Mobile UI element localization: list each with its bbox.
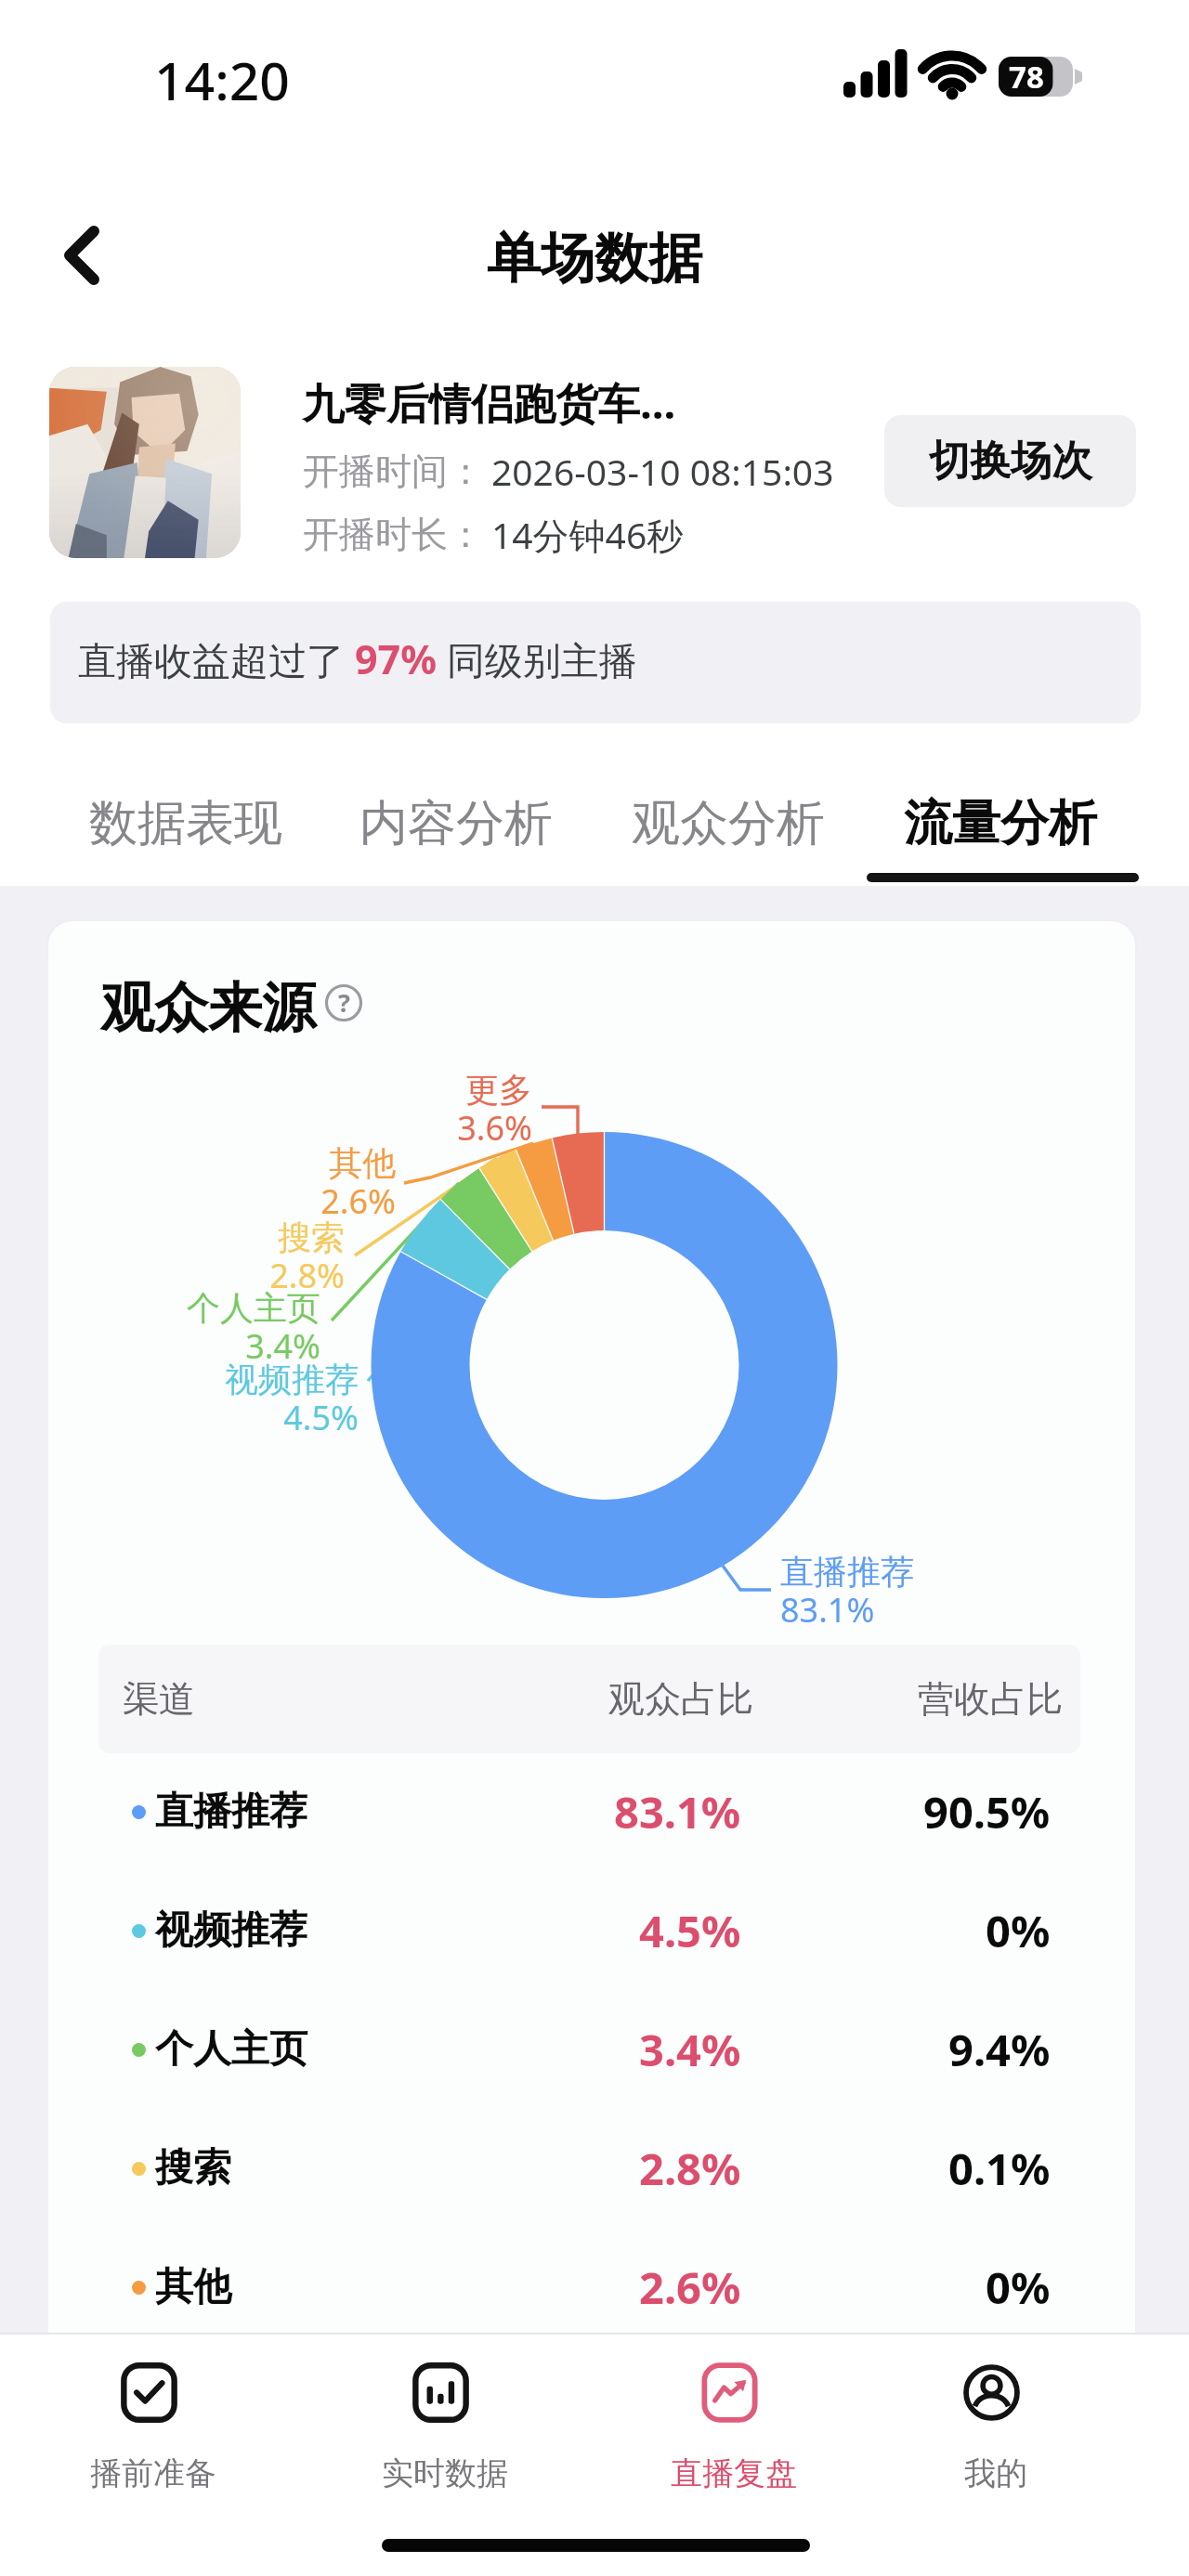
staticText: 2.6%: [639, 2257, 741, 2317]
staticText: 83.1%: [614, 1782, 741, 1841]
staticText: 我的: [964, 2453, 1027, 2493]
staticText: 九零后情侣跑货车...: [302, 373, 676, 431]
staticText: 9.4%: [948, 2020, 1051, 2079]
button[interactable]: 实时数据: [338, 2364, 542, 2493]
staticText: 更多 3.6%: [254, 1069, 532, 1151]
staticText: 97%: [355, 631, 437, 686]
staticText: 渠道: [123, 1676, 195, 1722]
button[interactable]: 搜索: [48, 2109, 1135, 2228]
staticText: 单场数据: [487, 225, 702, 293]
staticText: 14分钟46秒: [491, 510, 684, 559]
staticText: 90.5%: [923, 1782, 1051, 1841]
staticText: ?: [338, 985, 350, 1020]
staticText: 14:20: [154, 44, 290, 116]
staticText: 视频推荐: [155, 1906, 307, 1955]
button[interactable]: 直播推荐: [48, 1752, 1135, 1871]
staticText: 0%: [986, 2257, 1051, 2317]
staticText: 2.8%: [639, 2139, 741, 2198]
staticText: 播前准备: [90, 2453, 216, 2493]
button[interactable]: 数据表现: [65, 777, 307, 870]
button[interactable]: 其他: [48, 2228, 1135, 2333]
staticText: 4.5%: [639, 1901, 741, 1960]
staticText: 其他: [155, 2263, 231, 2311]
staticText: 3.4%: [639, 2020, 741, 2079]
staticText: 0.1%: [948, 2139, 1051, 2198]
button[interactable]: 内容分析: [335, 777, 577, 870]
button[interactable]: Help: [326, 985, 361, 1021]
staticText: 数据表现: [89, 793, 282, 854]
staticText: 实时数据: [382, 2453, 508, 2493]
button[interactable]: 个人主页: [48, 1990, 1135, 2109]
staticText: 观众分析: [632, 793, 825, 854]
staticText: 搜索 2.8%: [66, 1216, 345, 1298]
staticText: 0%: [986, 1901, 1051, 1960]
staticText: 开播时长：: [303, 512, 484, 557]
button[interactable]: Back: [26, 200, 137, 311]
staticText: 流量分析: [904, 793, 1097, 854]
staticText: 观众来源: [100, 974, 316, 1042]
staticText: 个人主页: [155, 2025, 307, 2074]
button[interactable]: 观众分析: [608, 777, 849, 870]
button[interactable]: 播前准备: [46, 2364, 251, 2493]
staticText: 78: [1009, 56, 1044, 98]
staticText: 视频推荐 4.5%: [80, 1359, 359, 1440]
staticText: 直播推荐 83.1%: [780, 1551, 1059, 1633]
staticText: 直播收益超过了: [78, 633, 355, 685]
staticText: 营收占比: [918, 1676, 1063, 1722]
staticText: 个人主页 3.4%: [48, 1287, 320, 1369]
button[interactable]: 直播复盘: [627, 2364, 831, 2493]
staticText: 内容分析: [359, 793, 553, 854]
staticText: 直播推荐: [155, 1788, 307, 1836]
staticText: 观众占比: [608, 1676, 753, 1722]
button[interactable]: 切换场次: [884, 415, 1136, 507]
staticText: 2026-03-10 08:15:03: [491, 447, 834, 496]
button[interactable]: 视频推荐: [48, 1871, 1135, 1990]
button[interactable]: 流量分析: [880, 777, 1121, 870]
staticText: 同级别主播: [437, 633, 637, 685]
staticText: 搜索: [155, 2144, 231, 2192]
staticText: 直播复盘: [671, 2453, 797, 2493]
staticText: 切换场次: [929, 436, 1092, 487]
staticText: 开播时间：: [303, 449, 484, 494]
button[interactable]: 我的: [889, 2364, 1093, 2493]
staticText: 其他 2.6%: [117, 1142, 396, 1224]
